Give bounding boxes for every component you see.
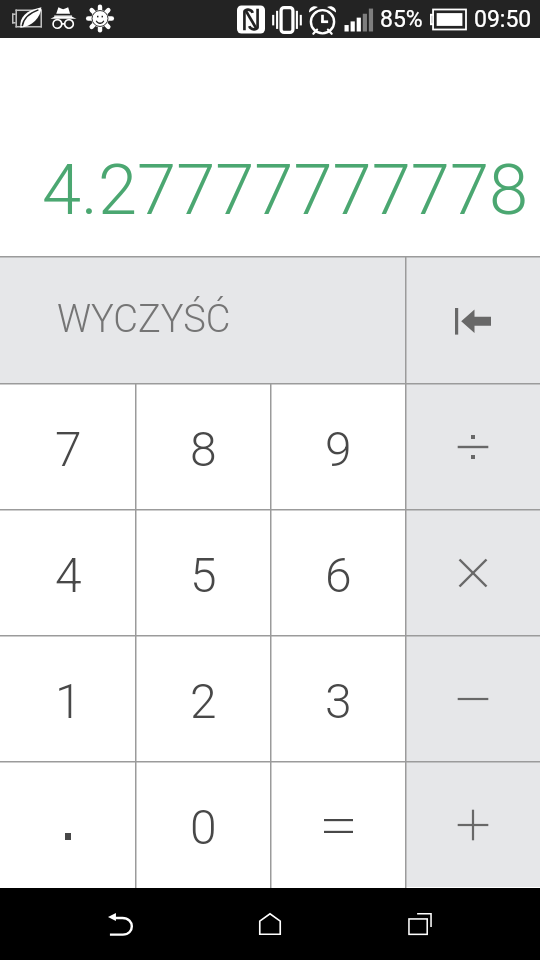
- staticText: 4.27777777778: [42, 149, 529, 232]
- button[interactable]: [0, 761, 135, 887]
- button[interactable]: 2: [135, 635, 270, 761]
- button[interactable]: Multiply: [405, 509, 540, 635]
- staticText: 1: [55, 673, 82, 729]
- button[interactable]: Add: [405, 761, 540, 887]
- staticText: 4: [55, 547, 82, 603]
- staticText: 8: [190, 421, 217, 477]
- button[interactable]: Backspace: [405, 256, 540, 383]
- button[interactable]: Subtract: [405, 635, 540, 761]
- staticText: 0: [190, 799, 217, 855]
- button[interactable]: Back: [45, 888, 195, 960]
- staticText: 2: [190, 673, 217, 729]
- staticText: 09:50: [474, 6, 532, 33]
- button[interactable]: Recents: [345, 888, 495, 960]
- staticText: WYCZYŚĆ: [57, 297, 231, 342]
- button[interactable]: Home: [195, 888, 345, 960]
- button[interactable]: 5: [135, 509, 270, 635]
- button[interactable]: 7: [0, 383, 135, 509]
- button[interactable]: Divide: [405, 383, 540, 509]
- staticText: 3: [325, 673, 352, 729]
- button[interactable]: 9: [270, 383, 405, 509]
- button[interactable]: 4: [0, 509, 135, 635]
- button[interactable]: 3: [270, 635, 405, 761]
- button[interactable]: 8: [135, 383, 270, 509]
- staticText: 5: [190, 547, 217, 603]
- button[interactable]: [270, 761, 405, 887]
- staticText: 9: [325, 421, 352, 477]
- staticText: 7: [55, 421, 82, 477]
- button[interactable]: WYCZYŚĆ: [0, 256, 405, 383]
- staticText: 6: [325, 547, 352, 603]
- button[interactable]: 1: [0, 635, 135, 761]
- button[interactable]: 0: [135, 761, 270, 887]
- staticText: 85%: [380, 6, 423, 33]
- button[interactable]: 6: [270, 509, 405, 635]
